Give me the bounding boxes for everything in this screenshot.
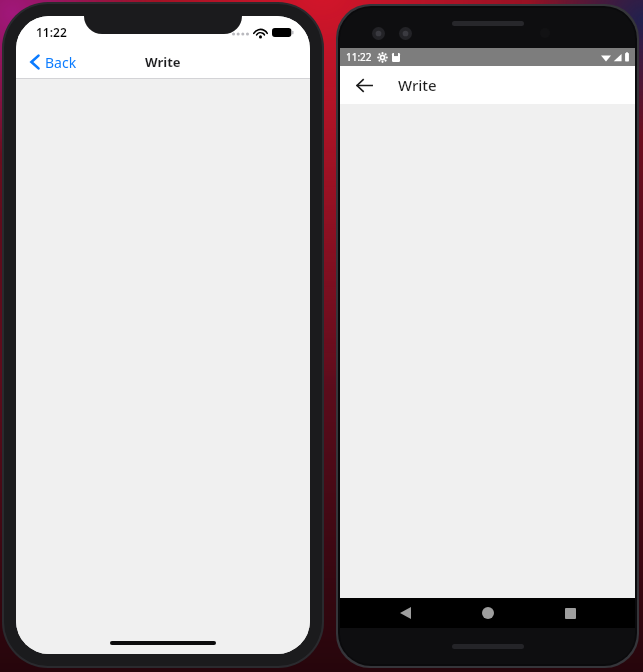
button[interactable]: Back <box>16 45 87 79</box>
button[interactable]: Home <box>471 598 505 628</box>
staticText: 11:22 <box>36 24 67 40</box>
button[interactable]: Back <box>388 598 422 628</box>
button[interactable]: Back <box>348 69 380 101</box>
staticText: 11:22 <box>346 50 372 64</box>
staticText: Write <box>398 75 437 95</box>
staticText: Back <box>45 53 77 72</box>
button[interactable]: Recents <box>553 598 587 628</box>
staticText: Write <box>145 53 181 71</box>
